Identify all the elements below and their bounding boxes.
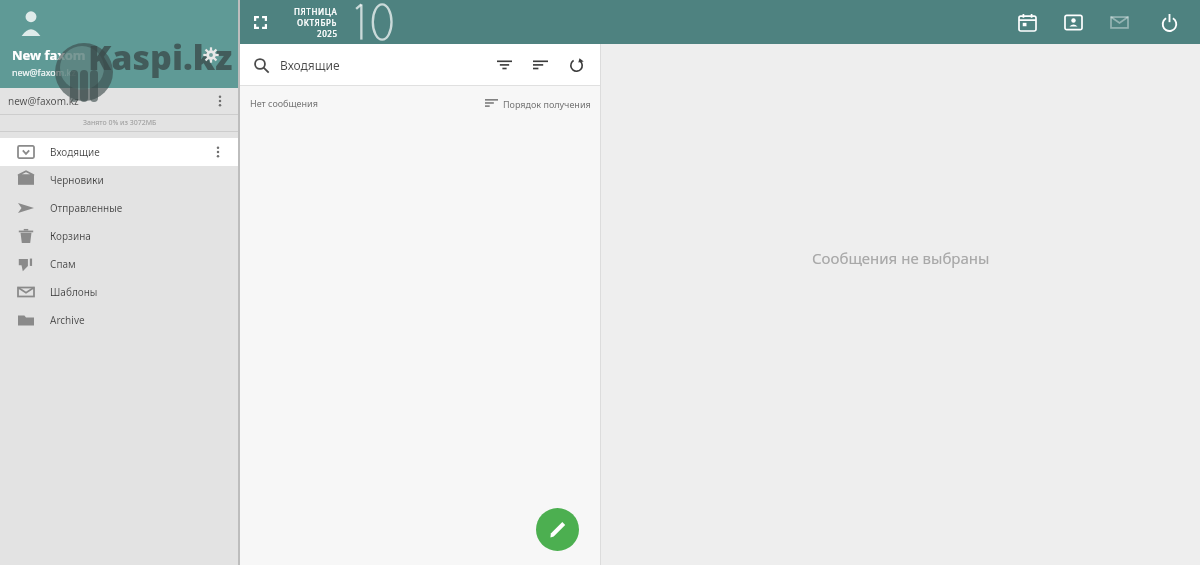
staticText: 2025 <box>317 28 338 39</box>
staticText: ПЯТНИЦА <box>294 6 338 17</box>
staticText: New faxom <box>12 46 86 64</box>
button[interactable]: Mail <box>1104 7 1134 37</box>
staticText: Kaspi.kz <box>88 34 233 80</box>
staticText: Отправленные <box>50 201 123 215</box>
staticText: new@faxom.kz <box>12 66 76 78</box>
button[interactable]: Шаблоны <box>0 278 240 306</box>
button[interactable]: Fullscreen <box>240 2 280 42</box>
staticText: Шаблоны <box>50 285 98 299</box>
button[interactable]: Compose <box>536 508 579 551</box>
staticText: Нет сообщения <box>250 97 318 109</box>
staticText: Черновики <box>50 173 104 187</box>
button[interactable]: Refresh <box>561 50 591 80</box>
staticText: Archive <box>50 313 85 327</box>
staticText: Сообщения не выбраны <box>812 248 990 268</box>
staticText: Занято 0% из 3072МБ <box>83 118 157 128</box>
button[interactable]: Отправленные <box>0 194 240 222</box>
staticText: new@faxom.kz <box>8 94 79 108</box>
button[interactable]: Filter <box>489 50 519 80</box>
button[interactable]: Account options <box>210 91 230 111</box>
button[interactable]: Корзина <box>0 222 240 250</box>
button[interactable]: Calendar <box>1012 7 1042 37</box>
button[interactable]: Порядок получения <box>485 97 591 110</box>
button[interactable]: Search <box>248 52 274 78</box>
button[interactable]: Contacts <box>1058 7 1088 37</box>
staticText: Порядок получения <box>503 98 591 110</box>
button[interactable]: Черновики <box>0 166 240 194</box>
button[interactable]: Power <box>1154 7 1184 37</box>
button[interactable]: Archive <box>0 306 240 334</box>
button[interactable]: Folder options <box>208 142 228 162</box>
staticText: Входящие <box>50 145 100 159</box>
button[interactable]: new@faxom.kz <box>0 88 240 114</box>
staticText: Корзина <box>50 229 91 243</box>
button[interactable]: Входящие <box>0 138 240 166</box>
staticText: Входящие <box>280 57 340 73</box>
button[interactable]: Спам <box>0 250 240 278</box>
staticText: ОКТЯБРЬ <box>297 17 338 28</box>
button[interactable]: Sort <box>525 50 555 80</box>
staticText: Спам <box>50 257 76 271</box>
